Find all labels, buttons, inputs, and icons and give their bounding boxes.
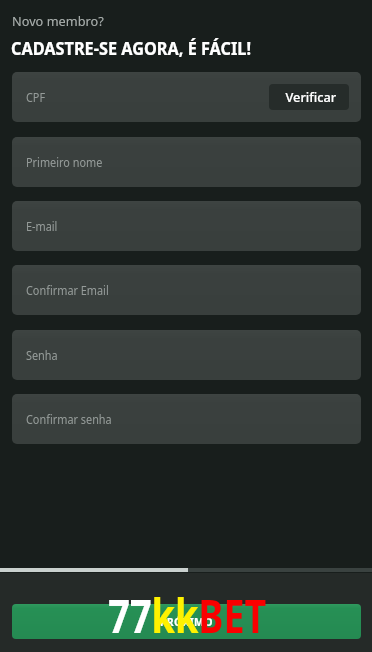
- button[interactable]: CPF: [12, 72, 361, 122]
- other: Progresso do cadastro: [0, 568, 372, 572]
- button[interactable]: Primeiro nome: [12, 137, 361, 187]
- staticText: Verificar: [285, 88, 336, 106]
- button[interactable]: Confirmar senha: [12, 394, 361, 444]
- staticText: Primeiro nome: [26, 154, 103, 171]
- button[interactable]: PRÓXIMO: [12, 604, 361, 639]
- button[interactable]: Confirmar Email: [12, 265, 361, 315]
- staticText: Senha: [26, 347, 58, 364]
- button[interactable]: E-mail: [12, 201, 361, 251]
- staticText: Novo membro?: [12, 12, 104, 30]
- staticText: CPF: [26, 89, 45, 106]
- staticText: PRÓXIMO: [160, 615, 213, 629]
- staticText: E-mail: [26, 218, 58, 235]
- staticText: CADASTRE-SE AGORA, É FÁCIL!: [11, 36, 251, 60]
- button[interactable]: Verificar: [269, 84, 349, 110]
- button[interactable]: Senha: [12, 330, 361, 380]
- staticText: Confirmar Email: [26, 282, 109, 299]
- staticText: Confirmar senha: [26, 411, 112, 428]
- staticText: 77kkBET: [108, 584, 267, 647]
